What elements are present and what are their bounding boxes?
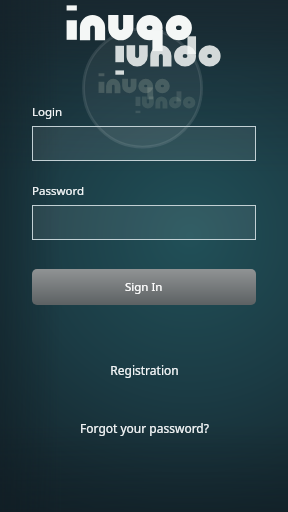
button[interactable]: Registration — [32, 359, 256, 381]
button[interactable]: Login field — [32, 126, 256, 161]
staticText: Forgot your password? — [80, 420, 209, 436]
button[interactable]: Forgot your password? — [32, 417, 256, 439]
button[interactable]: Sign In — [32, 269, 256, 305]
staticText: Registration — [110, 362, 179, 378]
staticText: Login — [32, 104, 63, 120]
button[interactable]: Password field — [32, 205, 256, 240]
staticText: Sign In — [125, 279, 163, 295]
staticText: Password — [32, 183, 85, 199]
